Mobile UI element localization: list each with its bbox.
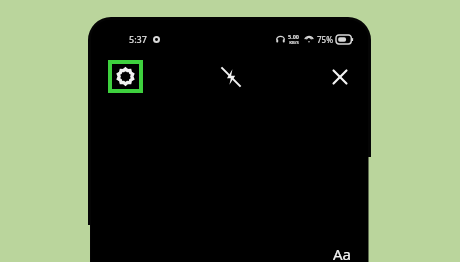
staticText: 75% (317, 34, 333, 45)
staticText: KB/S (289, 40, 299, 46)
staticText: 5:37 (129, 33, 147, 45)
staticText: Aa (333, 244, 352, 262)
button[interactable]: Camera settings (112, 64, 139, 89)
button[interactable]: Text style (325, 244, 359, 262)
staticText: 5.00 (288, 33, 299, 40)
button[interactable]: Flash off (214, 60, 247, 93)
button[interactable]: Close (323, 60, 356, 93)
